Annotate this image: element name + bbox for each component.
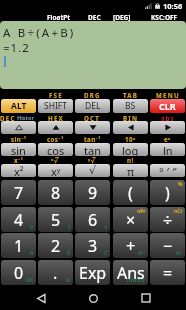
staticText: × [126,209,136,231]
button[interactable]: 9 [75,180,110,205]
staticText: cos⁻¹ [47,135,64,143]
button[interactable]: ) [150,180,185,205]
button[interactable]: SHIFT [38,99,73,113]
button[interactable]: 7 [1,180,36,205]
staticText: History [127,277,146,284]
staticText: M [66,277,71,284]
button[interactable] [38,121,73,134]
staticText: CLR [159,100,176,112]
button[interactable]: Ans [113,260,148,285]
button[interactable]: ln [150,143,185,156]
button[interactable]: 0 [1,260,36,285]
button[interactable]: − [150,233,185,258]
staticText: Ans [117,262,145,284]
staticText: C [104,250,108,257]
staticText: . [53,262,58,284]
staticText: nPr [137,208,146,215]
staticText: 7 [14,182,24,204]
button[interactable] [1,121,36,134]
staticText: ˣ√̅̅ [51,156,60,164]
staticText: TAB [123,91,139,99]
button[interactable]: 4 [1,207,36,232]
staticText: ʸ√̅̅ [88,156,97,164]
staticText: KSC:OFF [151,13,178,22]
button[interactable]: sin [1,143,36,156]
button[interactable]: CLR [150,99,185,113]
button[interactable]: ÷ [150,207,185,232]
staticText: DRG [84,91,101,99]
staticText: DEC [0,114,16,122]
staticText: sin [11,143,26,156]
button[interactable] [75,121,110,134]
button[interactable]: 6 [75,207,110,232]
staticText: − [163,235,173,257]
staticText: abs [161,114,175,122]
staticText: 0 [14,262,24,284]
button[interactable]: 3 [75,233,110,258]
staticText: % [178,181,183,188]
staticText: = [163,262,173,284]
staticText: ÷ [163,209,173,231]
button[interactable]: × [113,207,148,232]
staticText: DEC [88,13,101,22]
staticText: A [30,250,34,257]
staticText: B [67,250,71,257]
staticText: 3 [88,235,98,257]
staticText: BIN [123,114,139,122]
button[interactable]: ( [113,180,148,205]
staticText: D [30,224,34,231]
button[interactable]: √ [75,164,110,177]
button[interactable]: 1 [1,233,36,258]
button[interactable]: Back [29,286,53,310]
button[interactable]: x² [1,164,36,177]
staticText: √ [89,164,97,177]
staticText: sin⁻¹ [11,135,27,143]
staticText: log [122,143,139,156]
button[interactable]: ° ′ ″ [150,164,185,177]
button[interactable]: Recents [134,286,158,310]
staticText: 4 [14,209,24,231]
staticText: OCT [84,114,101,122]
staticText: MENU [156,91,180,99]
staticText: DEL [85,100,101,112]
button[interactable]: log [113,143,148,156]
button[interactable]: 8 [38,180,73,205]
button[interactable] [113,121,148,134]
button[interactable]: DEL [75,99,110,113]
button[interactable]: 5 [38,207,73,232]
staticText: + [126,235,136,257]
button[interactable]: Home [81,286,105,310]
button[interactable]: A B÷(A+B) [0,21,186,89]
button[interactable]: + [113,233,148,258]
staticText: π [127,164,135,177]
staticText: FloatPt [47,13,71,22]
staticText: tan [84,143,101,156]
button[interactable]: cos [38,143,73,156]
staticText: FSE [49,91,63,99]
button[interactable]: = [150,260,185,285]
staticText: 9 [88,182,98,204]
button[interactable]: BS [113,99,148,113]
staticText: 5 [51,209,61,231]
staticText: 6 [88,209,98,231]
staticText: ln [163,143,173,156]
button[interactable] [150,121,185,134]
staticText: 10:56 [163,1,183,11]
staticText: SHIFT [44,100,67,112]
button[interactable]: ALT [1,99,36,113]
staticText: BS [125,100,136,112]
button[interactable]: . [38,260,73,285]
staticText: History [17,114,37,122]
staticText: ALT [11,100,27,112]
staticText: cos [47,143,65,156]
staticText: x⁻¹ [14,156,24,164]
staticText: [DEG] [113,13,131,22]
button[interactable]: 2 [38,233,73,258]
staticText: tan⁻¹ [84,135,101,143]
button[interactable]: Exp [75,260,110,285]
button[interactable]: tan [75,143,110,156]
button[interactable]: π [113,164,148,177]
button[interactable]: xʸ [38,164,73,177]
staticText: x² [14,164,24,177]
staticText: M+ [138,250,146,257]
